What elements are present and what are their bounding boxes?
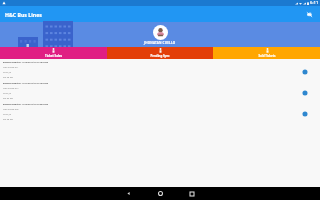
staticText: Expired Dispatch 11/11/2017 to 01/19/198… bbox=[3, 82, 48, 85]
staticText: Trip # 2025-022 bbox=[3, 108, 19, 111]
button[interactable]: View details bbox=[289, 80, 320, 101]
button[interactable]: Ticket Sales bbox=[0, 47, 107, 59]
button[interactable]: Sold Tickets bbox=[213, 47, 320, 59]
staticText: Pending Sync bbox=[150, 54, 170, 58]
button[interactable]: Expired Dispatch 11/10/2017 to 01/18/198… bbox=[0, 59, 320, 80]
staticText: Trip # 2025-017 bbox=[3, 87, 19, 90]
button[interactable]: View details bbox=[289, 59, 320, 80]
button[interactable]: View details bbox=[289, 101, 320, 122]
button[interactable]: Pending Sync bbox=[107, 47, 213, 59]
button[interactable]: Recent apps bbox=[176, 187, 208, 200]
staticText: Km 38 km bbox=[3, 76, 14, 79]
staticText: Expired Dispatch 11/12/2017 to 01/20/198… bbox=[3, 103, 48, 106]
staticText: 6:11 bbox=[310, 0, 319, 6]
staticText: H&C Bus Lines bbox=[5, 11, 42, 18]
button[interactable]: Back bbox=[112, 187, 144, 200]
staticText: Sold Tickets bbox=[258, 54, 276, 58]
button[interactable]: Sync status bbox=[303, 8, 315, 20]
staticText: Km 38 km bbox=[3, 118, 14, 121]
staticText: JHONATAN CUELLO bbox=[144, 41, 176, 45]
staticText: Cost: $0 bbox=[3, 92, 12, 95]
staticText: Km 52 km bbox=[3, 97, 14, 100]
staticText: Trip # 2025-011 bbox=[3, 66, 19, 69]
staticText: Expired Dispatch 11/10/2017 to 01/18/198… bbox=[3, 61, 48, 64]
staticText: Cost: $0 bbox=[3, 113, 12, 116]
button[interactable]: Expired Dispatch 11/11/2017 to 01/19/198… bbox=[0, 80, 320, 101]
button[interactable]: Expired Dispatch 11/12/2017 to 01/20/198… bbox=[0, 101, 320, 122]
button[interactable]: Home bbox=[144, 187, 176, 200]
staticText: Cost: $0 bbox=[3, 71, 12, 74]
staticText: Ticket Sales bbox=[45, 54, 62, 58]
